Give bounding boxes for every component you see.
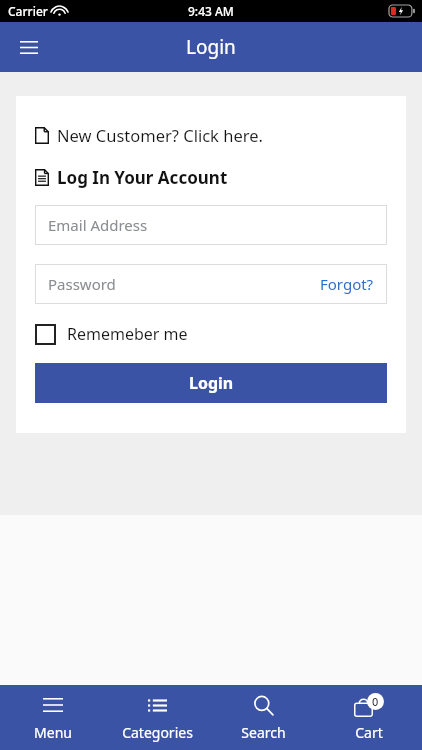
button[interactable]: Rememeber me bbox=[35, 323, 188, 345]
button[interactable]: Search bbox=[210, 685, 316, 750]
staticText: Search bbox=[241, 723, 286, 742]
staticText: Log In Your Account bbox=[57, 166, 228, 189]
staticText: 9:43 AM bbox=[188, 3, 234, 19]
staticText: Rememeber me bbox=[67, 323, 188, 345]
button[interactable]: 0 bbox=[316, 685, 422, 750]
button[interactable]: Forgot? bbox=[320, 274, 374, 294]
button[interactable]: New Customer? Click here. bbox=[35, 124, 387, 146]
staticText: Menu bbox=[34, 723, 72, 742]
button[interactable]: Menu bbox=[0, 685, 105, 750]
button[interactable]: Categories bbox=[105, 685, 210, 750]
staticText: Cart bbox=[355, 723, 383, 742]
staticText: Login bbox=[186, 34, 236, 60]
staticText: Email Address bbox=[48, 215, 148, 235]
button[interactable]: Email Address bbox=[35, 205, 387, 245]
staticText: 0 bbox=[372, 694, 379, 709]
staticText: Forgot? bbox=[320, 274, 374, 294]
button[interactable]: Menu bbox=[8, 26, 50, 68]
staticText: Password bbox=[48, 274, 116, 294]
button[interactable]: Login bbox=[35, 363, 387, 403]
button[interactable]: Password bbox=[35, 264, 387, 304]
staticText: Categories bbox=[122, 723, 193, 742]
staticText: Carrier bbox=[8, 3, 48, 19]
staticText: Login bbox=[189, 372, 234, 394]
staticText: New Customer? Click here. bbox=[57, 124, 263, 146]
